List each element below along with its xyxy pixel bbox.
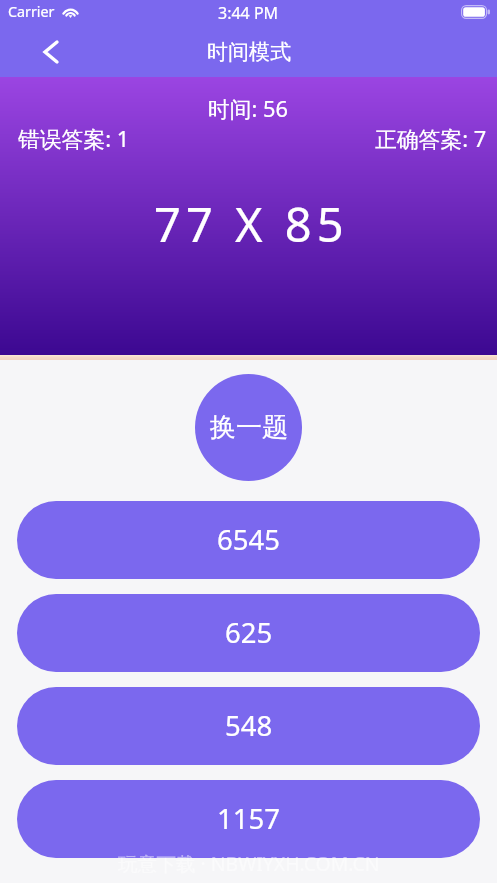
button[interactable]: 548 [17,687,480,765]
button[interactable]: Back [28,29,74,75]
staticText: 换一题 [210,411,288,444]
staticText: 3:44 PM [218,2,279,24]
staticText: 正确答案: 7 [375,124,487,154]
button[interactable]: 换一题 [195,374,302,481]
staticText: 错误答案: 1 [18,124,130,154]
staticText: 6545 [217,521,280,558]
staticText: 1157 [217,800,280,837]
staticText: 时间模式 [207,39,291,65]
staticText: Carrier [8,2,55,21]
staticText: 时间: 56 [208,94,289,124]
staticText: 77 X 85 [154,192,349,256]
staticText: 548 [225,707,273,744]
button[interactable]: 6545 [17,501,480,579]
button[interactable]: 1157 [17,780,480,858]
staticText: 625 [225,614,273,651]
button[interactable]: 625 [17,594,480,672]
staticText: 玩意下载 · NBWIYXH.COM.CN [118,850,380,876]
